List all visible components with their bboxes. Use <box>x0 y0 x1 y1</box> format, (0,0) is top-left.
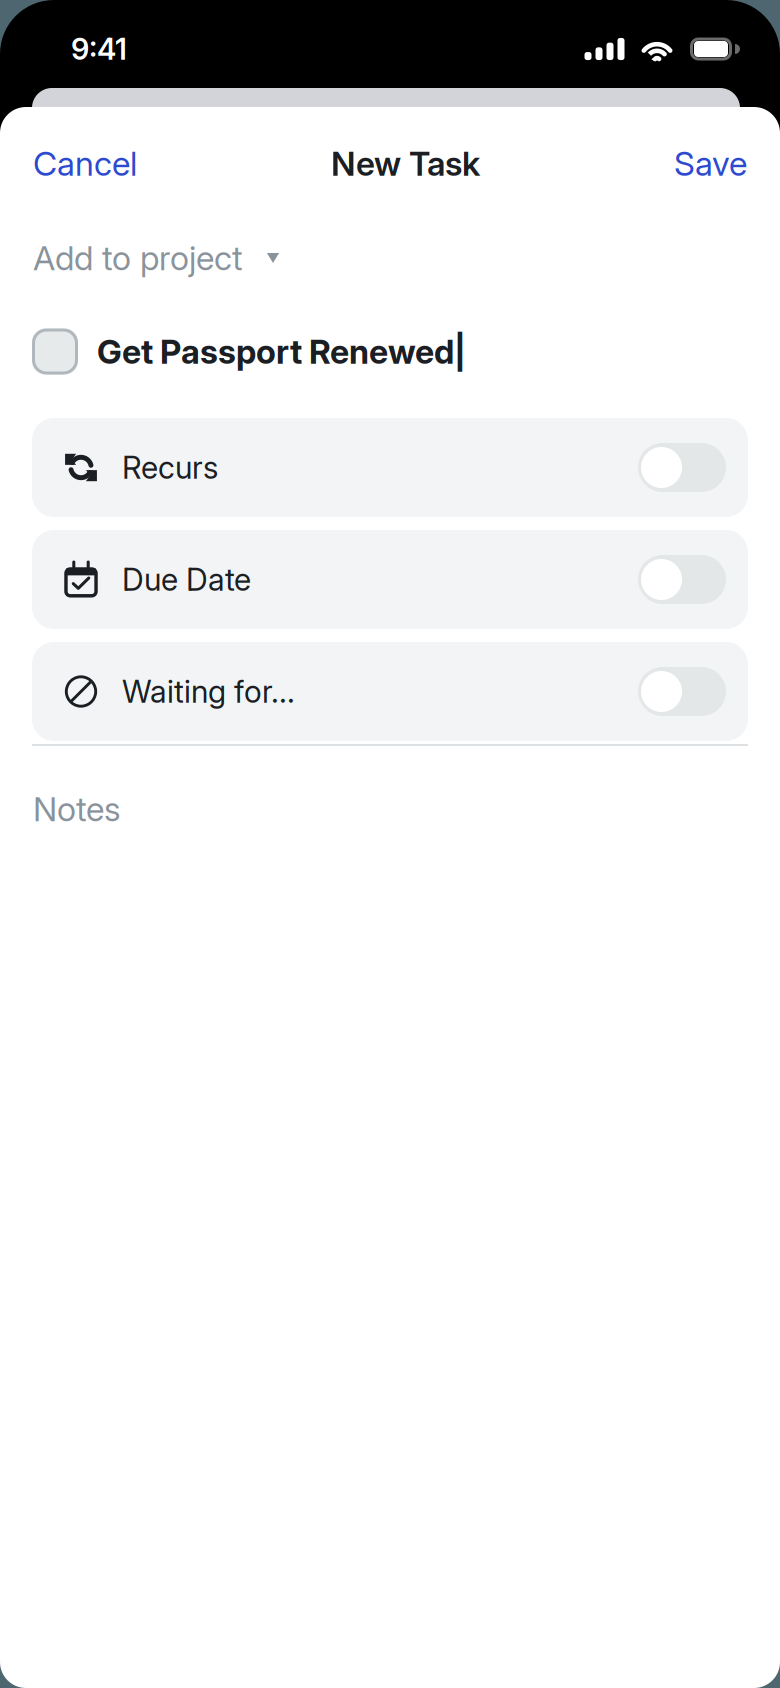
staticText: New Task <box>331 143 480 184</box>
staticText: 9:41 <box>71 31 127 67</box>
staticText: Waiting for... <box>122 673 295 710</box>
staticText: Save <box>674 143 747 184</box>
staticText: Get Passport Renewed| <box>97 331 466 372</box>
staticText: Add to project <box>33 238 243 278</box>
staticText: Due Date <box>122 561 251 598</box>
button[interactable]: Recurs <box>32 418 748 517</box>
staticText: Notes <box>33 789 121 829</box>
staticText: Cancel <box>33 143 137 184</box>
button[interactable]: Add to project <box>0 220 780 285</box>
button[interactable]: Waiting for... <box>32 642 748 741</box>
staticText: Recurs <box>122 449 218 486</box>
button[interactable]: Due Date <box>32 530 748 629</box>
button[interactable]: Save <box>660 131 747 196</box>
button[interactable]: Cancel <box>33 131 151 196</box>
